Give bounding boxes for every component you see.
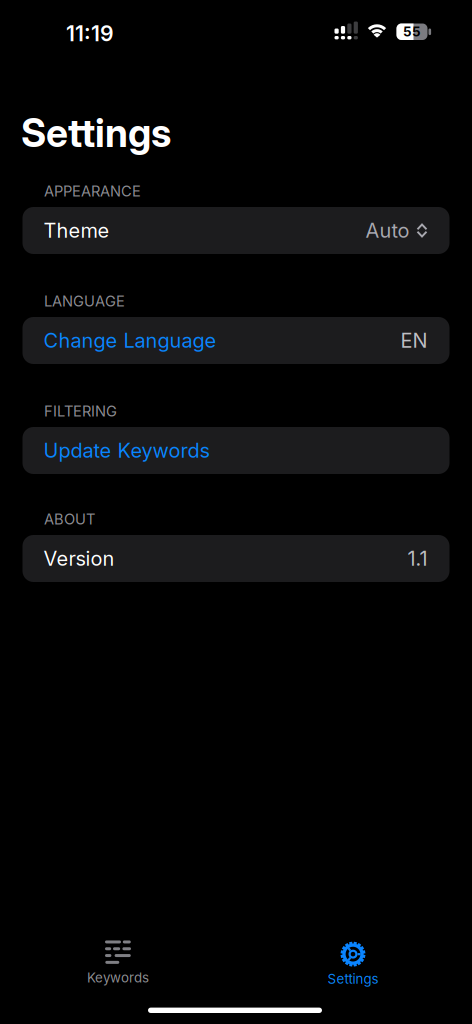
button[interactable]: Update Keywords: [22, 427, 449, 474]
staticText: APPEARANCE: [44, 182, 141, 200]
staticText: EN: [400, 329, 427, 352]
button[interactable]: Keywords: [48, 938, 188, 988]
staticText: Update Keywords: [43, 439, 209, 462]
staticText: LANGUAGE: [44, 292, 125, 310]
staticText: Keywords: [87, 970, 149, 985]
staticText: Settings: [21, 110, 171, 156]
staticText: FILTERING: [44, 402, 117, 420]
button[interactable]: Change Language: [22, 317, 449, 364]
staticText: 55: [403, 24, 421, 40]
staticText: 1.1: [407, 547, 427, 570]
button[interactable]: Theme: [22, 207, 449, 254]
button[interactable]: Settings: [283, 938, 423, 990]
staticText: Settings: [327, 971, 378, 987]
staticText: Version: [43, 547, 114, 570]
button[interactable]: Version: [22, 535, 449, 582]
staticText: Theme: [43, 219, 109, 242]
staticText: Auto: [365, 219, 409, 242]
staticText: Change Language: [43, 329, 216, 352]
staticText: ABOUT: [44, 510, 95, 528]
staticText: 11:19: [66, 21, 114, 46]
